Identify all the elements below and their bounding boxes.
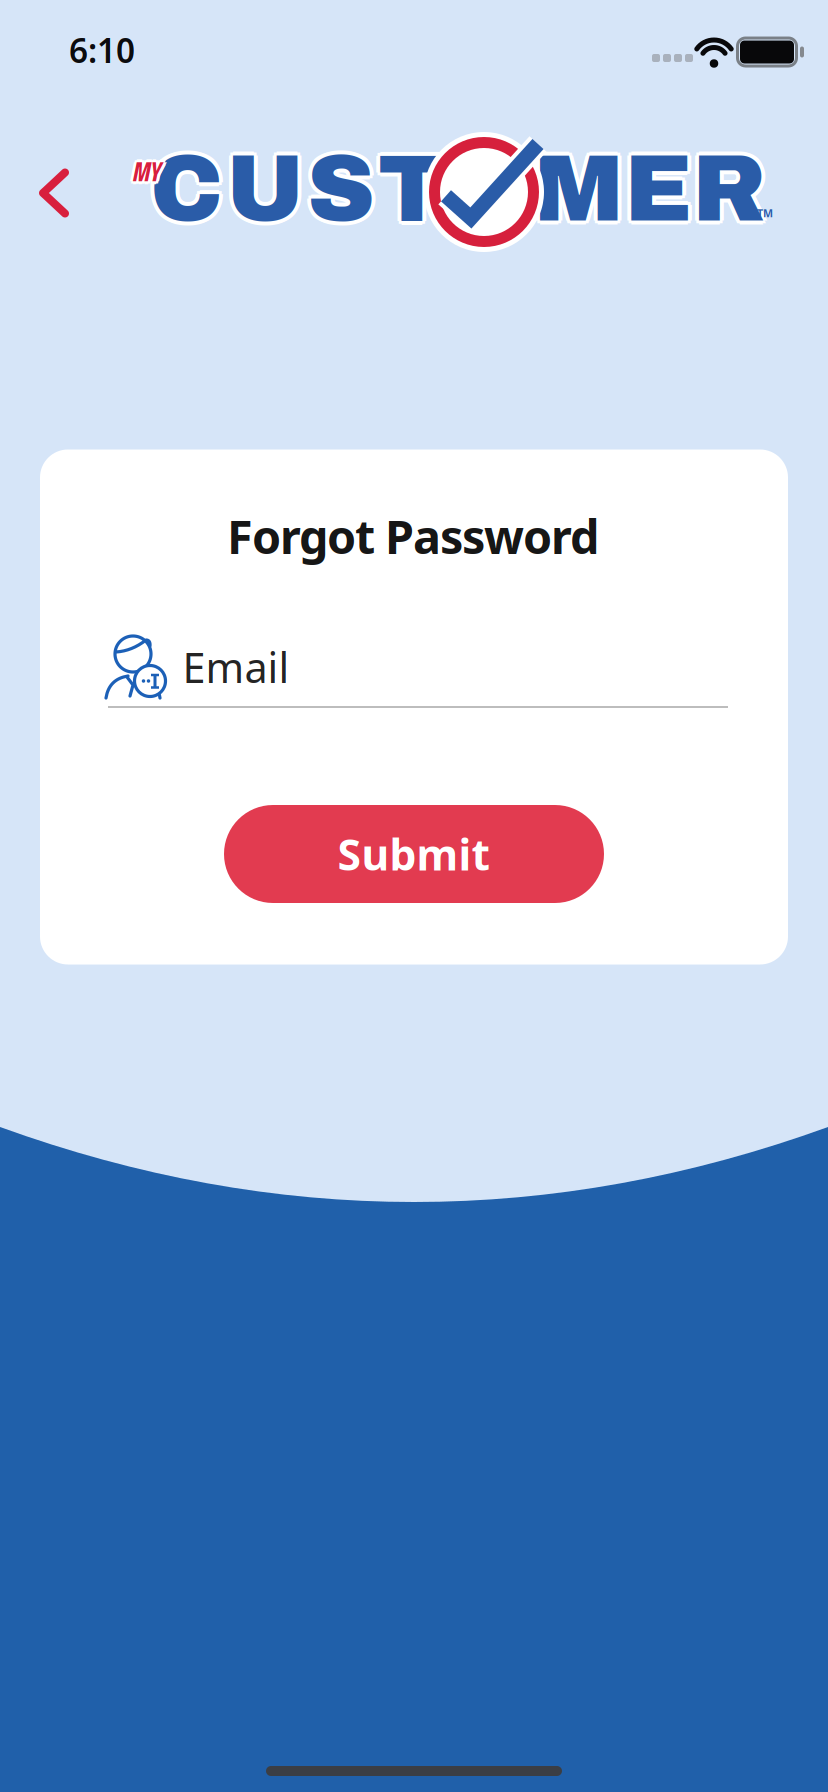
button[interactable]: Submit — [224, 805, 604, 903]
staticText: MER — [533, 134, 765, 236]
staticText: CUST — [147, 141, 443, 243]
button[interactable]: Email — [0, 0, 828, 1792]
staticText: MER — [533, 142, 765, 244]
staticText: MY — [133, 151, 161, 193]
staticText: CUST — [147, 135, 443, 237]
staticText: MY — [133, 154, 161, 196]
staticText: MY — [131, 153, 159, 195]
staticText: TM — [757, 206, 773, 220]
staticText: Submit — [337, 826, 490, 882]
staticText: MY — [135, 153, 163, 195]
staticText: Forgot Password — [227, 505, 599, 567]
staticText: MER — [537, 138, 769, 240]
staticText: 6:10 — [69, 28, 135, 72]
staticText: CUST — [146, 138, 442, 240]
staticText: CUST — [154, 138, 450, 240]
staticText: CUST — [153, 135, 449, 237]
staticText: MER — [536, 141, 768, 243]
staticText: MER — [530, 135, 762, 237]
staticText: MER — [536, 135, 768, 237]
staticText: MY — [136, 151, 164, 193]
staticText: CUST — [150, 142, 446, 244]
staticText: CUST — [150, 134, 446, 236]
staticText: MY — [135, 149, 163, 191]
staticText: MER — [529, 138, 761, 240]
staticText: CUST — [150, 138, 446, 240]
staticText: CUST — [153, 141, 449, 243]
staticText: MY — [130, 151, 158, 193]
staticText: MY — [131, 149, 159, 191]
staticText: MER — [530, 141, 762, 243]
staticText: Email — [182, 640, 289, 694]
staticText: MER — [533, 138, 765, 240]
button[interactable]: Back — [29, 158, 79, 227]
staticText: MY — [133, 148, 161, 190]
